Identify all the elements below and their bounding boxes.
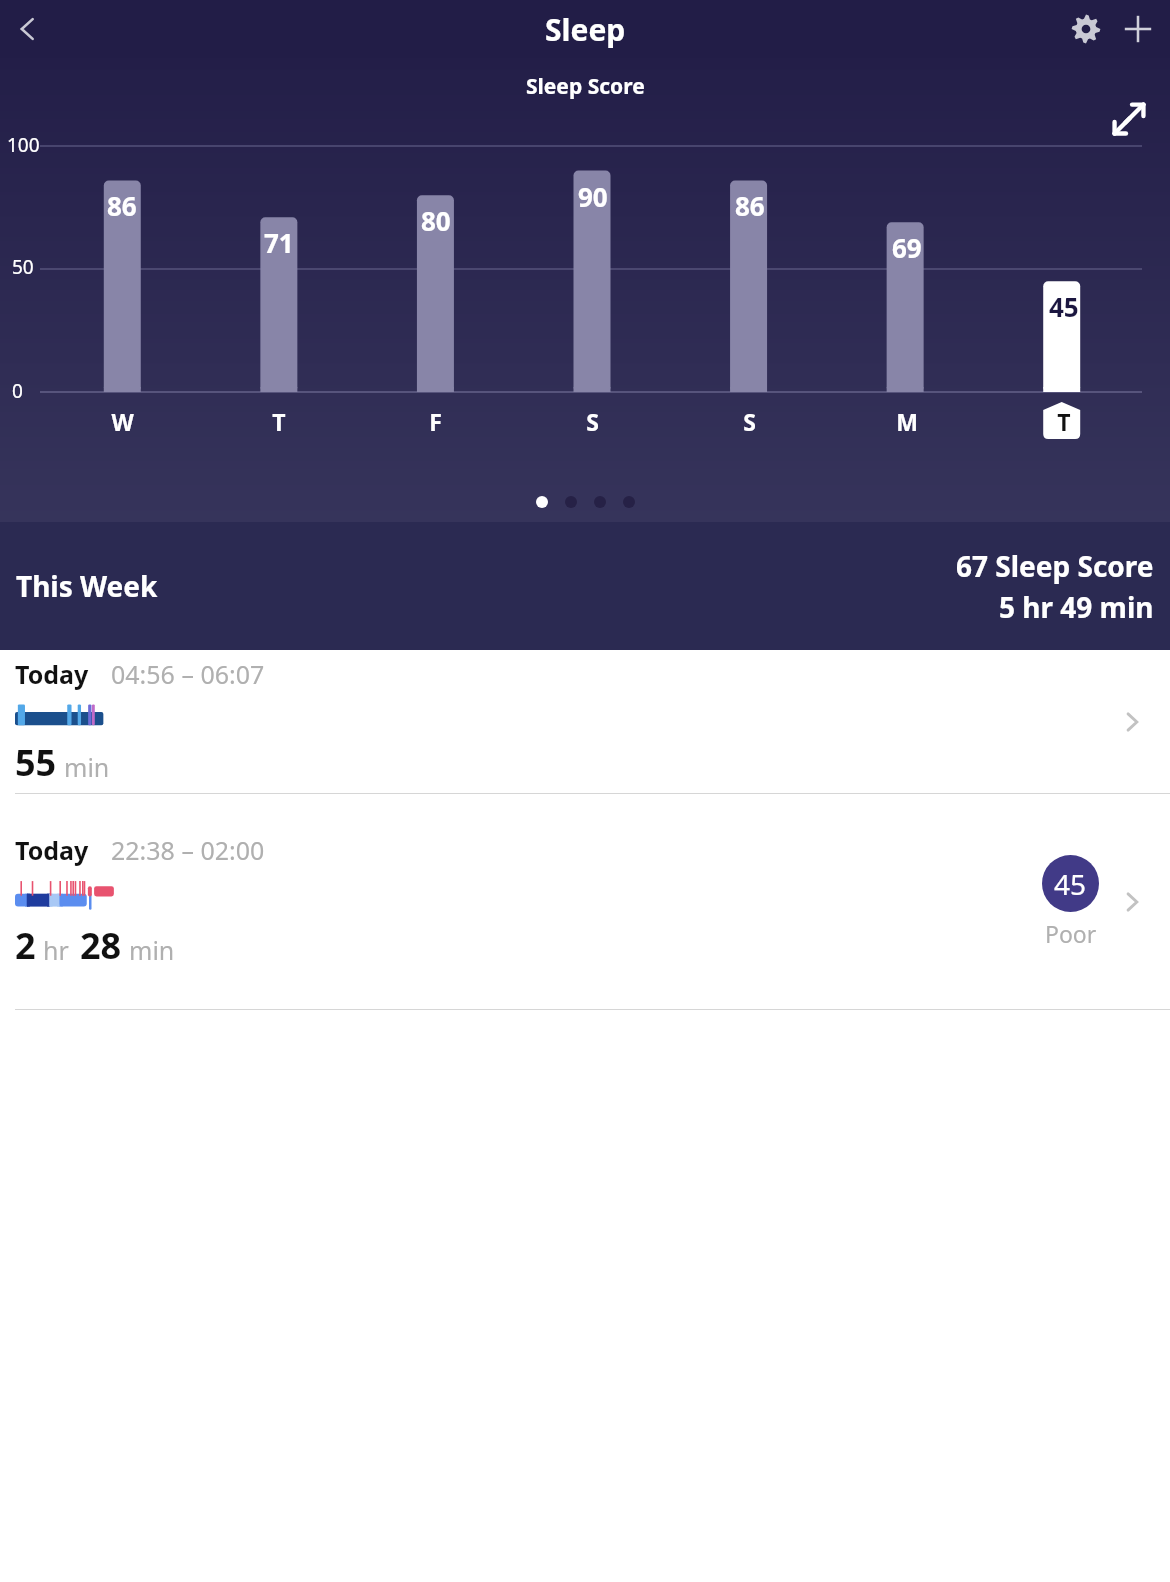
- staticText: S: [586, 406, 599, 437]
- staticText: 69: [892, 230, 922, 265]
- staticText: 86: [107, 188, 137, 223]
- staticText: 45: [1054, 865, 1087, 903]
- staticText: Today: [15, 657, 89, 691]
- staticText: 5 hr 49 min: [999, 588, 1154, 626]
- button[interactable]: Add: [1112, 3, 1164, 55]
- button[interactable]: Today: [0, 794, 1170, 1009]
- staticText: 90: [578, 179, 608, 214]
- staticText: 67 Sleep Score: [956, 547, 1154, 585]
- staticText: 80: [421, 203, 451, 238]
- button[interactable]: This Week: [0, 522, 1170, 650]
- staticText: 50: [12, 254, 34, 280]
- staticText: This Week: [16, 567, 158, 605]
- staticText: Sleep: [545, 9, 626, 50]
- staticText: 2: [15, 921, 36, 970]
- staticText: Sleep Score: [526, 72, 645, 101]
- staticText: hr: [43, 933, 69, 967]
- staticText: min: [129, 933, 175, 967]
- staticText: min: [64, 750, 110, 784]
- staticText: F: [429, 406, 442, 437]
- staticText: 71: [264, 225, 294, 260]
- staticText: M: [896, 406, 918, 437]
- button[interactable]: [594, 496, 606, 508]
- staticText: S: [743, 406, 756, 437]
- staticText: 55: [15, 738, 57, 787]
- button[interactable]: [565, 496, 577, 508]
- button[interactable]: Expand chart: [1102, 92, 1156, 146]
- staticText: T: [1057, 406, 1071, 437]
- staticText: Poor: [1045, 918, 1097, 949]
- staticText: 0: [12, 378, 23, 404]
- staticText: Today: [15, 833, 89, 867]
- staticText: 04:56 – 06:07: [111, 657, 265, 691]
- staticText: 86: [735, 188, 765, 223]
- button[interactable]: [536, 496, 548, 508]
- staticText: T: [272, 406, 286, 437]
- button[interactable]: [623, 496, 635, 508]
- button[interactable]: Settings: [1060, 3, 1112, 55]
- staticText: 22:38 – 02:00: [111, 833, 265, 867]
- staticText: W: [111, 406, 134, 437]
- staticText: 28: [80, 921, 122, 970]
- button[interactable]: Back: [4, 5, 52, 53]
- staticText: 100: [7, 132, 40, 158]
- staticText: 45: [1049, 289, 1079, 324]
- button[interactable]: Today: [0, 650, 1170, 793]
